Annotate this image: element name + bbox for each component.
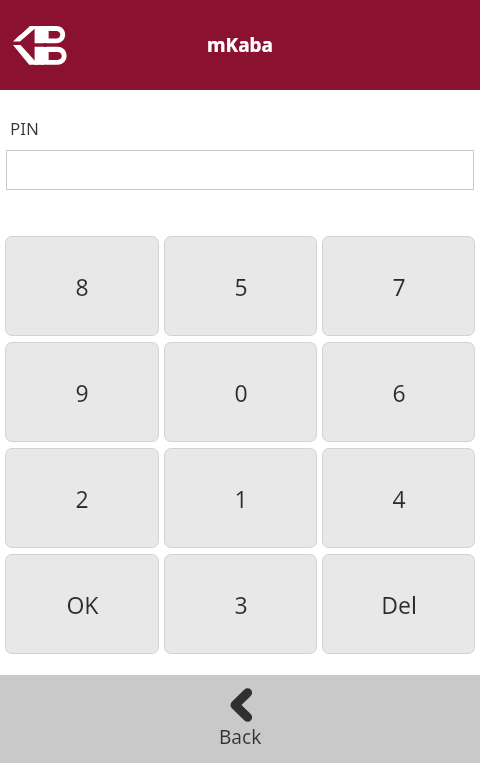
other: Back: [226, 688, 256, 722]
button[interactable]: Del: [322, 554, 475, 654]
staticText: 9: [75, 377, 89, 408]
button[interactable]: 1: [164, 448, 317, 548]
staticText: PIN: [10, 117, 39, 140]
staticText: 0: [234, 377, 248, 408]
staticText: 3: [234, 589, 248, 620]
button[interactable]: 7: [322, 236, 475, 336]
staticText: 4: [392, 483, 406, 514]
button[interactable]: 2: [5, 448, 159, 548]
staticText: Del: [381, 589, 417, 620]
button[interactable]: 5: [164, 236, 317, 336]
staticText: OK: [66, 589, 99, 620]
button[interactable]: 3: [164, 554, 317, 654]
button[interactable]: 4: [322, 448, 475, 548]
staticText: 6: [392, 377, 406, 408]
button[interactable]: Kaba logo: [12, 21, 68, 69]
staticText: 7: [392, 271, 406, 302]
button[interactable]: [6, 150, 474, 190]
staticText: 8: [75, 271, 89, 302]
button[interactable]: 8: [5, 236, 159, 336]
staticText: mKaba: [207, 32, 273, 58]
staticText: 2: [75, 483, 89, 514]
staticText: 5: [234, 271, 248, 302]
button[interactable]: 6: [322, 342, 475, 442]
staticText: 1: [234, 483, 248, 514]
button[interactable]: OK: [5, 554, 159, 654]
staticText: Back: [219, 724, 262, 750]
button[interactable]: 0: [164, 342, 317, 442]
button[interactable]: 9: [5, 342, 159, 442]
button[interactable]: Back: [0, 675, 480, 763]
